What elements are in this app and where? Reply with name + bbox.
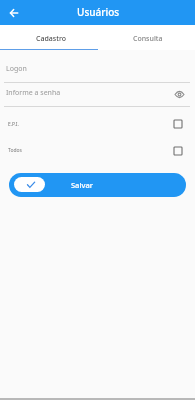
button[interactable]: Back [5,4,22,21]
button[interactable]: Cadastro [0,25,97,50]
staticText: Consulta [133,34,163,44]
staticText: Usuários [77,5,120,19]
button[interactable]: Consulta [97,25,195,50]
staticText: Salvar [71,180,93,190]
button[interactable]: Salvar [9,173,186,197]
staticText: Todos [8,147,22,154]
staticText: Logon [6,64,27,74]
button[interactable]: E.P.I. [0,117,195,132]
button[interactable]: Show password [172,87,187,102]
staticText: Cadastro [36,34,66,44]
staticText: E.P.I. [8,121,19,128]
button[interactable]: Todos [0,143,195,158]
staticText: Informe a senha [6,88,61,98]
